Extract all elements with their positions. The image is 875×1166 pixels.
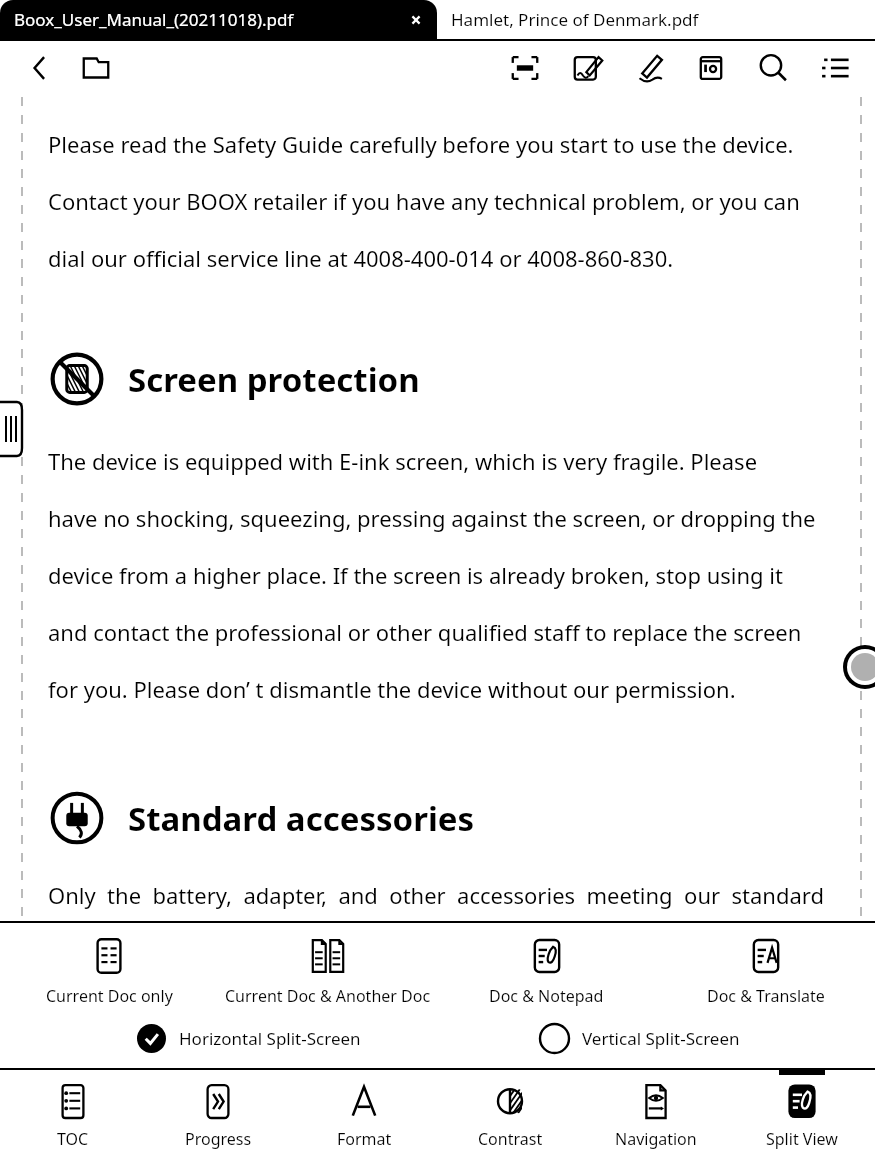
staticText: Doc & Translate — [707, 985, 825, 1007]
button[interactable]: Documents — [74, 46, 118, 90]
button[interactable]: Navigation — [583, 1070, 729, 1166]
staticText: Vertical Split-Screen — [582, 1027, 740, 1050]
staticText: Current Doc only — [46, 985, 173, 1007]
button[interactable]: TOC — [0, 1070, 145, 1166]
staticText: Standard accessories — [128, 796, 475, 841]
button[interactable]: Progress — [145, 1070, 291, 1166]
button[interactable]: Handwriting — [627, 46, 671, 90]
staticText: Doc & Notepad — [489, 985, 604, 1007]
staticText: Contact your BOOX retailer if you have a… — [48, 186, 800, 216]
staticText: Current Doc & Another Doc — [225, 985, 431, 1007]
staticText: have no shocking, squeezing, pressing ag… — [48, 503, 816, 533]
staticText: Horizontal Split-Screen — [179, 1027, 361, 1050]
staticText: Hamlet, Prince of Denmark.pdf — [451, 8, 875, 31]
button[interactable]: Current Doc only — [0, 931, 218, 1013]
button[interactable]: Horizontal Split-Screen — [136, 1023, 361, 1054]
button[interactable]: Annotate — [565, 46, 609, 90]
button[interactable]: Boox_User_Manual_(20211018).pdf — [0, 0, 437, 39]
button[interactable]: Search — [751, 46, 795, 90]
staticText: Format — [337, 1128, 392, 1150]
staticText: Progress — [185, 1128, 252, 1150]
button[interactable]: Back — [18, 46, 62, 90]
button[interactable]: Split View — [729, 1070, 875, 1166]
button[interactable]: Current Doc & Another Doc — [218, 931, 437, 1013]
button[interactable]: Hamlet, Prince of Denmark.pdf — [437, 0, 875, 39]
staticText: Contrast — [478, 1128, 543, 1150]
button[interactable]: Format — [291, 1070, 437, 1166]
button[interactable]: Dictionary — [689, 46, 733, 90]
button[interactable]: Vertical Split-Screen — [539, 1023, 740, 1054]
staticText: and contact the professional or other qu… — [48, 617, 802, 647]
staticText: Split View — [766, 1128, 838, 1150]
staticText: Boox_User_Manual_(20211018).pdf — [14, 8, 403, 31]
button[interactable]: OCR — [503, 46, 547, 90]
button[interactable]: Doc & Notepad — [437, 931, 656, 1013]
staticText: Screen protection — [128, 357, 420, 402]
button[interactable]: Contrast — [437, 1070, 583, 1166]
staticText: Navigation — [615, 1128, 697, 1150]
staticText: The device is equipped with E-ink screen… — [48, 446, 758, 476]
staticText: device from a higher place. If the scree… — [48, 560, 783, 590]
button[interactable]: Doc & Translate — [656, 931, 875, 1013]
staticText: Please read the Safety Guide carefully b… — [48, 129, 794, 159]
staticText: Only the battery, adapter, and other acc… — [48, 880, 824, 910]
button[interactable]: Menu — [813, 46, 857, 90]
staticText: dial our official service line at 4008-4… — [48, 243, 674, 273]
button[interactable]: Close tab — [403, 7, 429, 33]
staticText: for you. Please don’ t dismantle the dev… — [48, 674, 736, 704]
staticText: TOC — [57, 1128, 89, 1150]
